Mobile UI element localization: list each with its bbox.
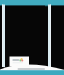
- button[interactable]: [0, 0, 64, 5]
- button[interactable]: [0, 70, 64, 75]
